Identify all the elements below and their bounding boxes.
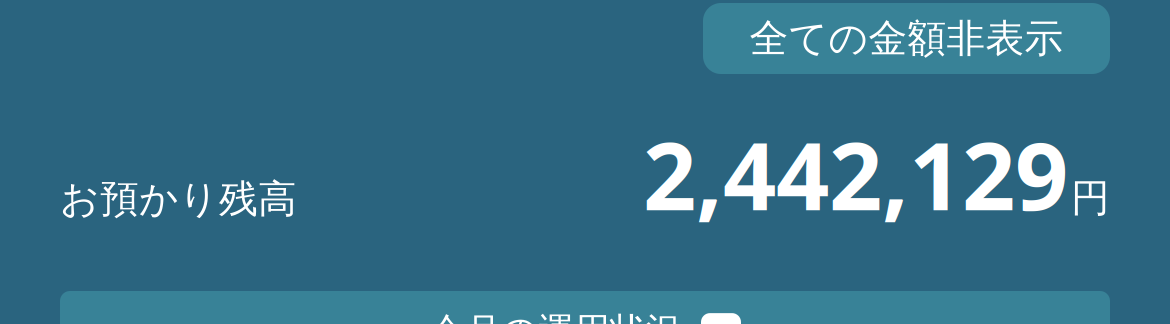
- staticText: 円: [1071, 174, 1110, 222]
- staticText: 2,442,129: [643, 112, 1068, 236]
- button[interactable]: 全ての金額非表示: [703, 3, 1110, 74]
- staticText: 全ての金額非表示: [749, 15, 1063, 62]
- staticText: 今月の運用状況: [429, 309, 682, 324]
- button[interactable]: 今月の運用状況: [60, 291, 1110, 324]
- staticText: お預かり残高: [60, 175, 297, 223]
